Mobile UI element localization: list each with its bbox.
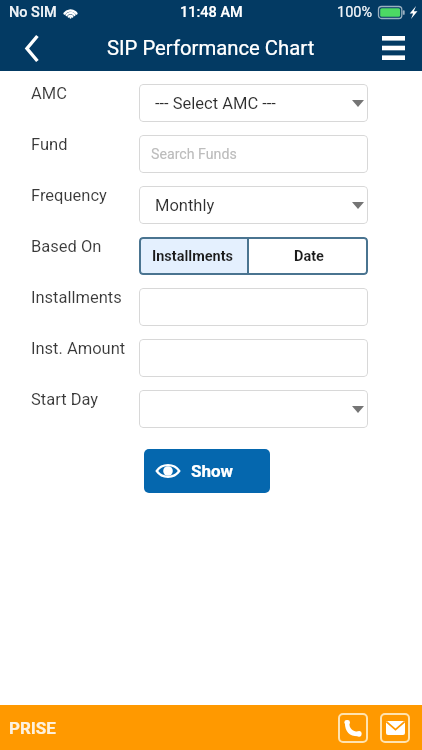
button[interactable]: Input field [139, 288, 368, 326]
button[interactable]: Search Funds [139, 135, 368, 173]
button[interactable]: Input field [139, 390, 368, 428]
button[interactable]: Call [338, 713, 368, 743]
staticText: Based On [31, 237, 102, 256]
staticText: Start Day [31, 390, 99, 409]
staticText: Show [191, 461, 234, 481]
staticText: --- Select AMC --- [155, 94, 276, 113]
button[interactable]: Date [249, 237, 368, 275]
button[interactable]: Show [144, 449, 270, 493]
button[interactable]: Email [380, 713, 410, 743]
staticText: Installments [152, 248, 234, 265]
staticText: Fund [31, 135, 68, 154]
staticText: PRISE [9, 718, 56, 738]
staticText: Date [294, 248, 324, 265]
button[interactable]: Input field [139, 339, 368, 377]
staticText: 11:48 AM [180, 4, 243, 21]
staticText: SIP Performance Chart [107, 36, 315, 60]
staticText: 100% [337, 4, 373, 21]
staticText: Monthly [155, 196, 215, 215]
staticText: AMC [31, 84, 67, 103]
button[interactable]: Installments [139, 237, 247, 275]
staticText: Installments [31, 288, 122, 307]
staticText: Search Funds [151, 146, 237, 163]
button[interactable]: Back [0, 25, 63, 71]
button[interactable]: Menu [364, 25, 422, 71]
staticText: No SIM [9, 4, 57, 21]
button[interactable]: --- Select AMC --- [139, 84, 368, 122]
button[interactable]: PRISE [9, 718, 56, 738]
button[interactable]: Monthly [139, 186, 368, 224]
staticText: Inst. Amount [31, 339, 126, 358]
staticText: Frequency [31, 186, 107, 205]
